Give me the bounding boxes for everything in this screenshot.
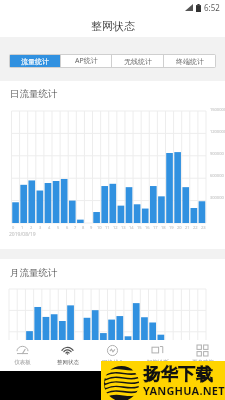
staticText: 网络优化	[102, 359, 124, 366]
staticText: 10	[97, 225, 102, 230]
staticText: YANGHUA.NET	[143, 383, 225, 398]
staticText: 3	[39, 225, 42, 230]
button[interactable]: Back	[106, 379, 120, 393]
staticText: 2	[30, 225, 33, 230]
staticText: 仪表板	[14, 359, 31, 366]
button[interactable]: 无线统计	[112, 55, 163, 67]
staticText: AP统计	[75, 56, 98, 66]
staticText: 19	[169, 225, 174, 230]
staticText: 14	[129, 225, 134, 230]
staticText: 整网状态	[57, 359, 79, 366]
staticText: 扬华下载	[143, 364, 213, 385]
staticText: 16	[145, 225, 150, 230]
staticText: 终端统计	[176, 57, 204, 66]
staticText: 300000	[210, 195, 224, 200]
staticText: 11	[105, 225, 110, 230]
button[interactable]: 终端统计	[164, 55, 215, 67]
staticText: 无线统计	[124, 57, 152, 66]
staticText: 23	[201, 225, 206, 230]
staticText: 1500000	[210, 107, 225, 112]
staticText: 4	[48, 225, 51, 230]
staticText: 15	[137, 225, 142, 230]
staticText: 5	[57, 225, 60, 230]
staticText: 日流量统计	[10, 88, 58, 100]
staticText: 2019/08/19	[9, 231, 36, 238]
staticText: 月流量统计	[10, 267, 58, 279]
staticText: 900000	[210, 151, 224, 156]
button[interactable]: 更多功能	[180, 340, 225, 371]
button[interactable]: 仪表板	[0, 340, 45, 371]
staticText: 整网状态	[91, 19, 135, 33]
staticText: 18	[161, 225, 166, 230]
staticText: 8	[82, 225, 85, 230]
button[interactable]: 流量统计	[10, 55, 60, 67]
staticText: 7	[74, 225, 77, 230]
staticText: 22	[193, 225, 198, 230]
staticText: 13	[121, 225, 126, 230]
staticText: 20	[177, 225, 182, 230]
staticText: 9	[90, 225, 93, 230]
staticText: 600000	[210, 173, 224, 178]
staticText: 1	[21, 225, 24, 230]
staticText: 流量统计	[21, 57, 49, 66]
staticText: 17	[153, 225, 158, 230]
staticText: 6	[66, 225, 69, 230]
staticText: 更多功能	[192, 359, 214, 366]
staticText: 1200000	[210, 129, 225, 134]
staticText: 6:52	[204, 2, 220, 13]
staticText: 智能诊断	[147, 359, 169, 366]
staticText: 0	[12, 225, 15, 230]
button[interactable]: 网络优化	[90, 340, 135, 371]
staticText: 12	[113, 225, 118, 230]
button[interactable]: 智能诊断	[135, 340, 180, 371]
staticText: 21	[185, 225, 190, 230]
button[interactable]: 整网状态	[45, 340, 90, 371]
button[interactable]: AP统计	[61, 55, 111, 67]
